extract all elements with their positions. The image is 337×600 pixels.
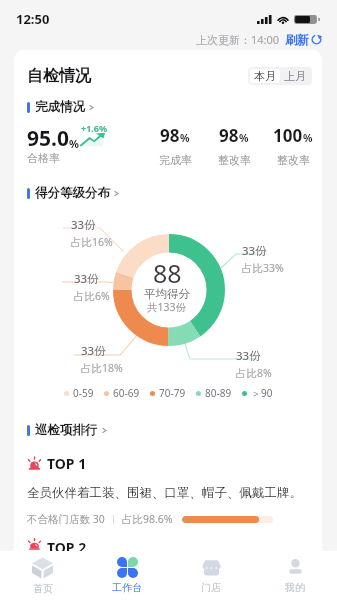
staticText: 完成率 (159, 153, 192, 167)
staticText: 60-69 (113, 386, 140, 400)
staticText: 占比18% (81, 361, 123, 375)
staticText: 整改率 (218, 153, 251, 167)
staticText: 共133份 (147, 300, 187, 314)
staticText: 95.0 (27, 124, 69, 153)
button[interactable]: 首页 (0, 551, 85, 600)
staticText: 巡检项排行 (35, 422, 98, 438)
button[interactable]: 巡检项排行 (27, 422, 108, 438)
button[interactable]: 得分等级分布 (27, 185, 120, 201)
staticText: 80-89 (205, 386, 232, 400)
staticText: 0-59 (73, 386, 94, 400)
staticText: 我的 (285, 581, 305, 594)
button[interactable]: 本月 (250, 69, 280, 83)
staticText: 首页 (33, 582, 53, 595)
other: 刷新 (311, 34, 322, 45)
staticText: 98 (219, 124, 239, 147)
button[interactable]: 刷新 (285, 32, 322, 47)
staticText: % (180, 131, 190, 145)
button[interactable]: 我的 (253, 551, 337, 600)
staticText: 88 (153, 256, 182, 290)
staticText: 不合格门店数 30 (27, 512, 105, 526)
staticText: 整改率 (277, 153, 310, 167)
staticText: 本月 (254, 69, 276, 83)
staticText: 自检情况 (27, 66, 91, 86)
staticText: 刷新 (285, 32, 309, 47)
staticText: ＞90 (251, 386, 273, 400)
button[interactable]: 门店 (169, 551, 253, 600)
button[interactable]: 工作台 (85, 551, 169, 600)
staticText: 占比6% (74, 289, 110, 303)
staticText: 占比98.6% (122, 512, 173, 526)
staticText: 占比8% (236, 366, 272, 380)
button[interactable]: 完成情况 (27, 99, 95, 115)
button[interactable]: 上月 (280, 69, 310, 83)
staticText: 得分等级分布 (35, 185, 110, 201)
staticText: 门店 (201, 581, 221, 594)
staticText: 12:50 (16, 10, 50, 28)
staticText: % (239, 131, 249, 145)
staticText: 合格率 (27, 151, 60, 165)
staticText: 70-79 (159, 386, 186, 400)
staticText: 工作台 (112, 581, 142, 594)
staticText: 33份 (236, 348, 261, 364)
staticText: 全员伙伴着工装、围裙、口罩、帽子、佩戴工牌。 (27, 485, 302, 501)
staticText: +1.6% (81, 122, 108, 134)
staticText: 完成情况 (35, 99, 85, 115)
staticText: 33份 (74, 271, 99, 287)
staticText: 33份 (242, 243, 267, 259)
staticText: TOP 2 (47, 538, 87, 551)
staticText: 上月 (284, 69, 306, 83)
staticText: 占比16% (71, 235, 113, 249)
staticText: 平均得分 (144, 287, 190, 301)
staticText: 占比33% (242, 261, 284, 275)
staticText: 33份 (81, 343, 106, 359)
staticText: % (69, 136, 79, 151)
staticText: 上次更新：14:00 (196, 32, 280, 47)
staticText: 33份 (71, 217, 96, 233)
staticText: TOP 1 (47, 454, 87, 473)
staticText: 98 (160, 124, 180, 147)
staticText: % (303, 131, 313, 145)
staticText: 100 (273, 124, 303, 147)
